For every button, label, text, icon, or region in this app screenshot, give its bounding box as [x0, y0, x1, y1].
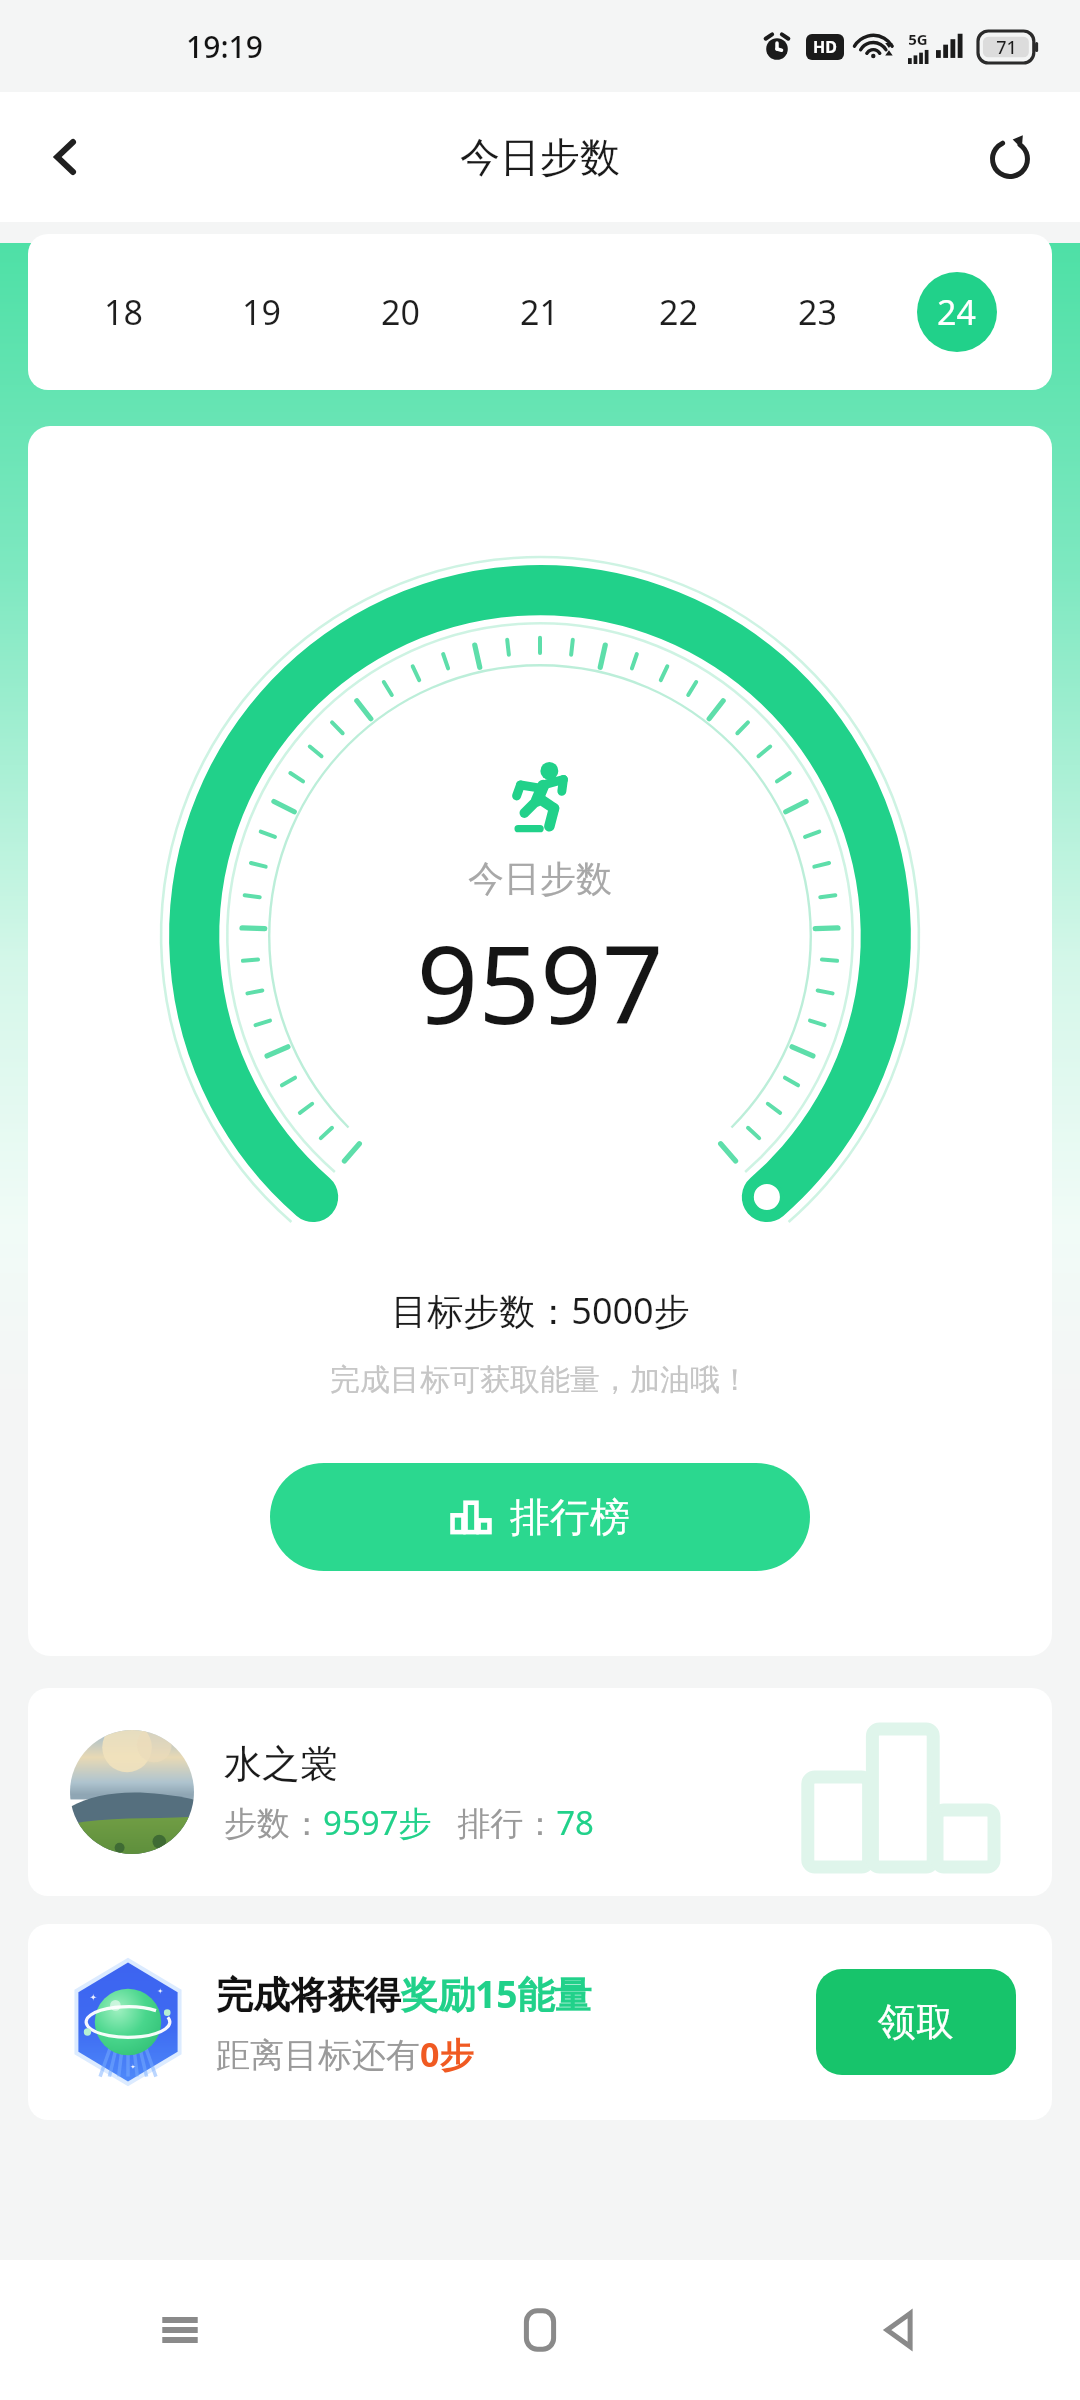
staticText: HD [813, 36, 837, 58]
staticText: 完成将获得奖励15能量 [216, 1968, 592, 2019]
button[interactable]: Refresh [970, 117, 1050, 197]
staticText: 排行榜 [510, 1492, 630, 1542]
staticText: 完成目标可获取能量，加油哦！ [330, 1361, 750, 1399]
button[interactable]: 22 [609, 268, 748, 356]
button[interactable]: 领取 [816, 1969, 1016, 2075]
button[interactable]: 24 [887, 268, 1026, 356]
staticText: 23 [798, 289, 837, 335]
staticText: 19:19 [186, 26, 263, 67]
staticText: 21 [520, 289, 559, 335]
button[interactable]: Home [360, 2275, 720, 2385]
staticText: 水之裳 [224, 1740, 338, 1788]
button[interactable]: Back [720, 2275, 1080, 2385]
staticText: 5G [908, 29, 928, 49]
staticText: 今日步数 [468, 856, 612, 901]
button[interactable]: 19 [192, 268, 331, 356]
staticText: 19 [242, 289, 281, 335]
button[interactable]: Recents [0, 2275, 360, 2385]
staticText: 步数：9597步 排行：78 [224, 1800, 594, 1845]
staticText: 目标步数：5000步 [391, 1286, 690, 1335]
button[interactable]: 20 [331, 268, 470, 356]
staticText: 9597 [416, 909, 664, 1056]
staticText: 71 [996, 35, 1017, 60]
button[interactable]: 23 [748, 268, 887, 356]
button[interactable]: 21 [470, 268, 609, 356]
staticText: 今日步数 [460, 132, 620, 182]
staticText: 22 [659, 289, 698, 335]
staticText: 18 [104, 289, 143, 335]
button[interactable]: 排行榜 [270, 1463, 810, 1571]
staticText: 领取 [878, 1998, 954, 2046]
button[interactable]: 18 [54, 268, 192, 356]
staticText: 距离目标还有0步 [216, 2031, 474, 2077]
staticText: 24 [937, 289, 976, 335]
staticText: 20 [381, 289, 420, 335]
button[interactable]: Back [26, 117, 106, 197]
button[interactable]: 水之裳 [28, 1688, 1052, 1896]
